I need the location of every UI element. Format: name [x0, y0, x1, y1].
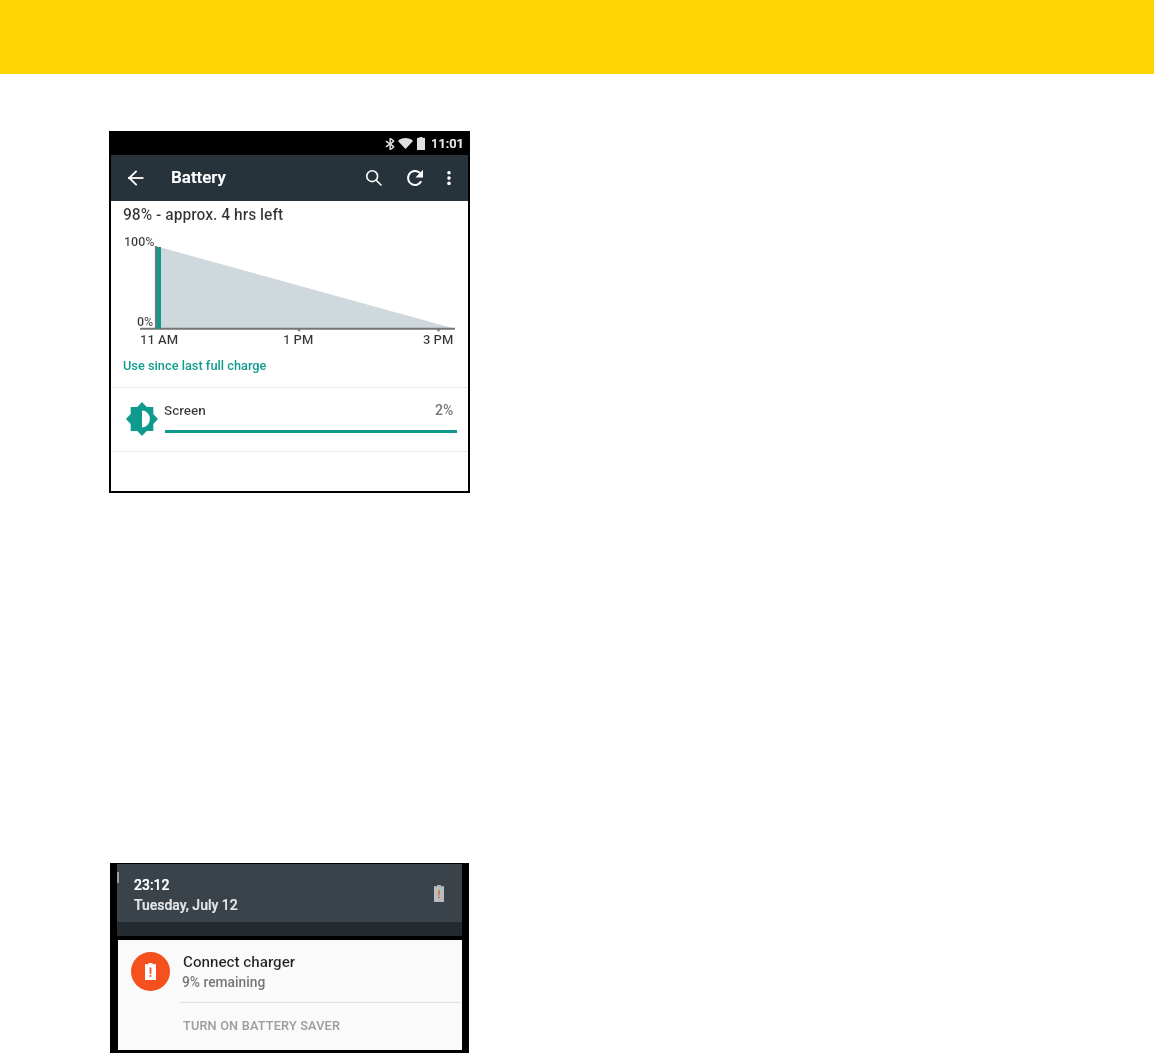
staticText: 1 PM [283, 332, 314, 347]
button[interactable]: More options [435, 155, 462, 201]
staticText: 11 AM [140, 332, 178, 347]
button[interactable]: Screen [111, 388, 468, 451]
staticText: Tuesday, July 12 [134, 897, 238, 913]
button[interactable]: TURN ON BATTERY SAVER [118, 1003, 462, 1050]
button[interactable]: Connect charger [118, 940, 462, 1002]
staticText: 3 PM [423, 332, 454, 347]
button[interactable]: Back [115, 158, 155, 198]
staticText: 98% - approx. 4 hrs left [123, 206, 284, 224]
button[interactable]: Refresh [394, 155, 435, 201]
staticText: Connect charger [183, 953, 296, 971]
staticText: Screen [164, 402, 206, 418]
staticText: Battery [171, 167, 226, 187]
staticText: 2% [435, 402, 454, 418]
staticText: 9% remaining [182, 974, 266, 990]
staticText: TURN ON BATTERY SAVER [183, 1018, 341, 1033]
staticText: 23:12 [134, 877, 170, 893]
button[interactable]: Search [353, 155, 394, 201]
staticText: Use since last full charge [123, 358, 267, 373]
staticText: 11:01 [431, 136, 464, 151]
staticText: 100% [124, 234, 155, 249]
staticText: 0% [137, 314, 154, 329]
